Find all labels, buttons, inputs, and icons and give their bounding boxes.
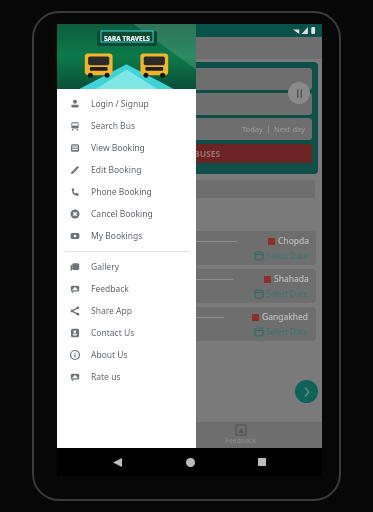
button[interactable]: Feedback (57, 278, 196, 300)
staticText: Select Date (266, 250, 309, 261)
button[interactable]: Search Bus (57, 115, 196, 137)
staticText: Next day (274, 124, 306, 134)
staticText: Search Bus (91, 120, 135, 132)
staticText: Phone Booking (91, 186, 152, 198)
staticText: Login / Signup (91, 98, 149, 110)
staticText: About Us (91, 349, 128, 361)
button[interactable] (67, 93, 312, 115)
staticText: Share App (91, 305, 132, 317)
staticText: SEARCH BUSES (159, 148, 221, 160)
staticText: Jalgaon (81, 235, 111, 247)
button[interactable]: Share App (57, 300, 196, 322)
staticText: Select Date (266, 326, 309, 337)
staticText: COVID 19 SAFE GUIDELINES (72, 184, 174, 194)
button[interactable]: Feedback (215, 423, 267, 448)
staticText: Gangakhed (262, 311, 309, 323)
staticText: Today (242, 124, 263, 134)
button[interactable]: Jalgaon (63, 231, 316, 265)
button[interactable]: Jalgaon (63, 307, 316, 341)
staticText: View Booking (91, 142, 145, 154)
button[interactable]: Login / Signup (57, 93, 196, 115)
button[interactable]: Rate us (57, 366, 196, 388)
button[interactable]: Swap (288, 82, 310, 104)
button[interactable] (67, 68, 312, 90)
button[interactable]: Next day (274, 124, 306, 134)
button[interactable]: Next (295, 380, 318, 403)
staticText: Contact Us (91, 327, 135, 339)
staticText: Shahada (274, 273, 309, 285)
button[interactable]: SEARCH BUSES (67, 144, 312, 163)
staticText: Jalgaon (81, 311, 111, 323)
staticText: Rate us (91, 371, 121, 383)
button[interactable]: Gallery (57, 256, 196, 278)
button[interactable]: Recents (249, 449, 275, 475)
staticText: Edit Booking (91, 164, 142, 176)
staticText: Cancel Booking (91, 208, 153, 220)
button[interactable]: Phone Booking (57, 181, 196, 203)
button[interactable]: Cancel Booking (57, 203, 196, 225)
button[interactable]: Home (177, 449, 203, 475)
button[interactable]: Contact Us (57, 322, 196, 344)
staticText: My Bookings (91, 230, 143, 242)
staticText: Feedback (91, 283, 129, 295)
staticText: Gallery (91, 261, 119, 273)
staticText: SARA TRAVELS (97, 41, 168, 55)
button[interactable]: COVID 19 SAFE GUIDELINES (64, 180, 315, 198)
staticText: Chopda (278, 235, 309, 247)
button[interactable]: About Us (57, 344, 196, 366)
staticText: SARA TRAVELS (104, 34, 150, 43)
button[interactable]: Edit Booking (57, 159, 196, 181)
staticText: Feedback (225, 436, 257, 446)
staticText: Popular routes (65, 207, 161, 225)
staticText: Select Date (266, 288, 309, 299)
button[interactable]: Jalgaon (63, 269, 316, 303)
button[interactable]: Back (104, 449, 130, 475)
button[interactable]: View Booking (57, 137, 196, 159)
button[interactable]: Today (242, 124, 263, 134)
button[interactable]: My Bookings (57, 225, 196, 247)
